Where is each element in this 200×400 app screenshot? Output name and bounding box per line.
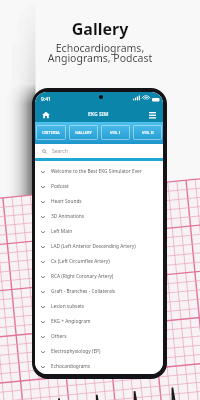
staticText: Lesion subsets [51,303,85,310]
staticText: VOL I [110,130,121,135]
staticText: Electrophysiology (EP) [51,348,101,355]
button[interactable]: VOL I [101,125,130,140]
button[interactable]: Graft - Branches - Collaterals [35,284,163,299]
staticText: Others [51,333,67,340]
button[interactable]: CRITERIA [36,125,66,140]
staticText: VOL II [142,130,154,135]
staticText: Gallery [0,18,200,40]
button[interactable]: RCA (Right Coronary Artery) [35,269,163,284]
button[interactable]: Home [40,109,52,121]
staticText: Graft - Branches - Collaterals [51,288,116,295]
staticText: Cx (Left Circumflex Artery) [51,258,110,265]
staticText: EKG SIM [88,111,109,118]
staticText: CRITERIA [42,130,60,135]
staticText: GALLERY [75,130,92,135]
button[interactable]: Menu [146,109,158,121]
button[interactable]: Welcome to the Best EKG Simulator Ever [35,164,163,179]
button[interactable]: Others [35,329,163,344]
button[interactable]: Search [42,148,163,155]
button[interactable]: Heart Sounds [35,194,163,209]
staticText: Search [52,148,68,155]
button[interactable]: Lesion subsets [35,299,163,314]
button[interactable]: Cx (Left Circumflex Artery) [35,254,163,269]
staticText: 3D Animations [51,213,85,220]
staticText: Echocardiograms [51,363,91,370]
button[interactable]: GALLERY [69,125,98,140]
staticText: Heart Sounds [51,198,82,205]
staticText: EKG + Angiogram [51,318,91,325]
staticText: Left Main [51,228,73,235]
staticText: LAD (Left Anterior Descending Artery) [51,243,136,250]
staticText: Welcome to the Best EKG Simulator Ever [51,168,142,175]
staticText: 9:41 [41,96,51,103]
staticText: Echocardiograms, Angiograms, Podcast [0,41,200,65]
button[interactable]: 3D Animations [35,209,163,224]
staticText: Podcast [51,183,69,190]
button[interactable]: VOL II [133,125,162,140]
button[interactable]: LAD (Left Anterior Descending Artery) [35,239,163,254]
button[interactable]: Left Main [35,224,163,239]
button[interactable]: Echocardiograms [35,359,163,374]
button[interactable]: EKG + Angiogram [35,314,163,329]
staticText: RCA (Right Coronary Artery) [51,273,114,280]
button[interactable]: Podcast [35,179,163,194]
button[interactable]: Electrophysiology (EP) [35,344,163,359]
